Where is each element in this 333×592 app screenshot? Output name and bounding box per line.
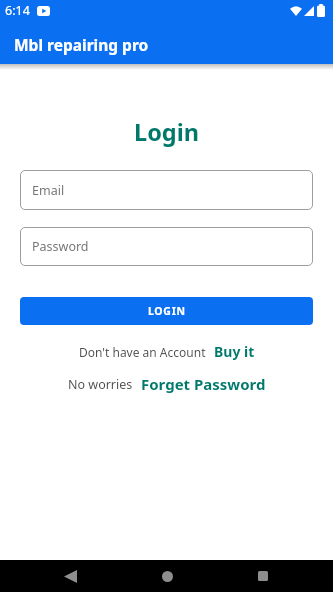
staticText: Email (32, 182, 65, 199)
staticText: Forget Password (141, 374, 266, 394)
staticText: LOGIN (148, 304, 186, 318)
button[interactable]: Password (20, 227, 313, 266)
button[interactable]: No worries (68, 374, 266, 394)
button[interactable] (239, 560, 287, 592)
staticText: Password (32, 238, 89, 255)
button[interactable]: Don't have an Account (79, 342, 255, 361)
button[interactable]: LOGIN (20, 297, 313, 325)
button[interactable] (46, 560, 94, 592)
staticText: Don't have an Account (79, 344, 206, 360)
staticText: No worries (68, 376, 133, 393)
button[interactable] (143, 560, 191, 592)
staticText: 6:14 (5, 2, 30, 19)
button[interactable]: Email (20, 170, 313, 210)
staticText: Login (134, 116, 199, 148)
staticText: Mbl repairing pro (14, 34, 149, 55)
staticText: Buy it (214, 342, 255, 361)
